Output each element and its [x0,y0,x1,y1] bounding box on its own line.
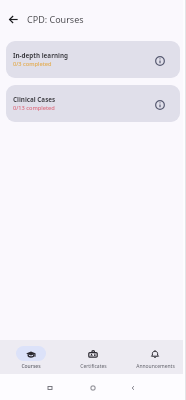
staticText: Clinical Cases [13,95,56,104]
button[interactable]: Announcements [124,340,186,374]
button[interactable]: Back [0,9,27,29]
button[interactable]: Info [153,54,167,68]
button[interactable]: Recent apps [40,378,60,398]
button[interactable]: Clinical Cases [6,85,180,122]
button[interactable]: Home [83,378,103,398]
button[interactable]: Courses [0,340,62,374]
staticText: CPD: Courses [27,13,84,25]
staticText: Courses [21,363,41,370]
staticText: Announcements [136,363,175,370]
button[interactable]: Back [123,378,143,398]
staticText: 0/13 completed [13,104,55,112]
button[interactable]: Certificates [62,340,124,374]
staticText: Certificates [80,363,107,370]
button[interactable]: In-depth learning [6,41,180,78]
button[interactable]: Info [153,98,167,112]
staticText: 0/3 completed [13,60,52,68]
staticText: In-depth learning [13,51,69,60]
